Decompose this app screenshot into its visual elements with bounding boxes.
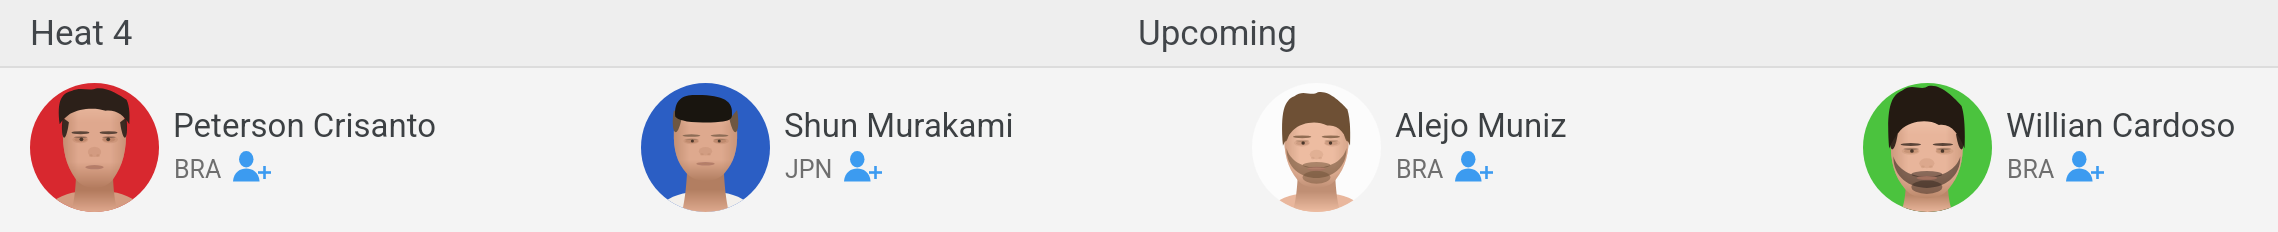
- staticText: Willian Cardoso: [2006, 106, 2236, 145]
- staticText: BRA: [174, 155, 222, 184]
- button[interactable]: Peterson Crisanto: [0, 68, 611, 232]
- button[interactable]: Follow Willian Cardoso: [2064, 147, 2108, 187]
- button[interactable]: Follow Shun Murakami: [842, 147, 886, 187]
- staticText: Peterson Crisanto: [173, 106, 437, 145]
- staticText: JPN: [785, 155, 833, 184]
- button[interactable]: Follow Peterson Crisanto: [231, 147, 275, 187]
- staticText: BRA: [1396, 155, 1444, 184]
- staticText: Upcoming: [1138, 13, 1297, 54]
- button[interactable]: Follow Alejo Muniz: [1453, 147, 1497, 187]
- staticText: Shun Murakami: [784, 106, 1014, 145]
- staticText: BRA: [2007, 155, 2055, 184]
- staticText: Heat 4: [30, 13, 133, 54]
- staticText: Alejo Muniz: [1395, 106, 1567, 145]
- button[interactable]: Shun Murakami: [611, 68, 1222, 232]
- button[interactable]: Willian Cardoso: [1833, 68, 2278, 232]
- button[interactable]: Alejo Muniz: [1222, 68, 1833, 232]
